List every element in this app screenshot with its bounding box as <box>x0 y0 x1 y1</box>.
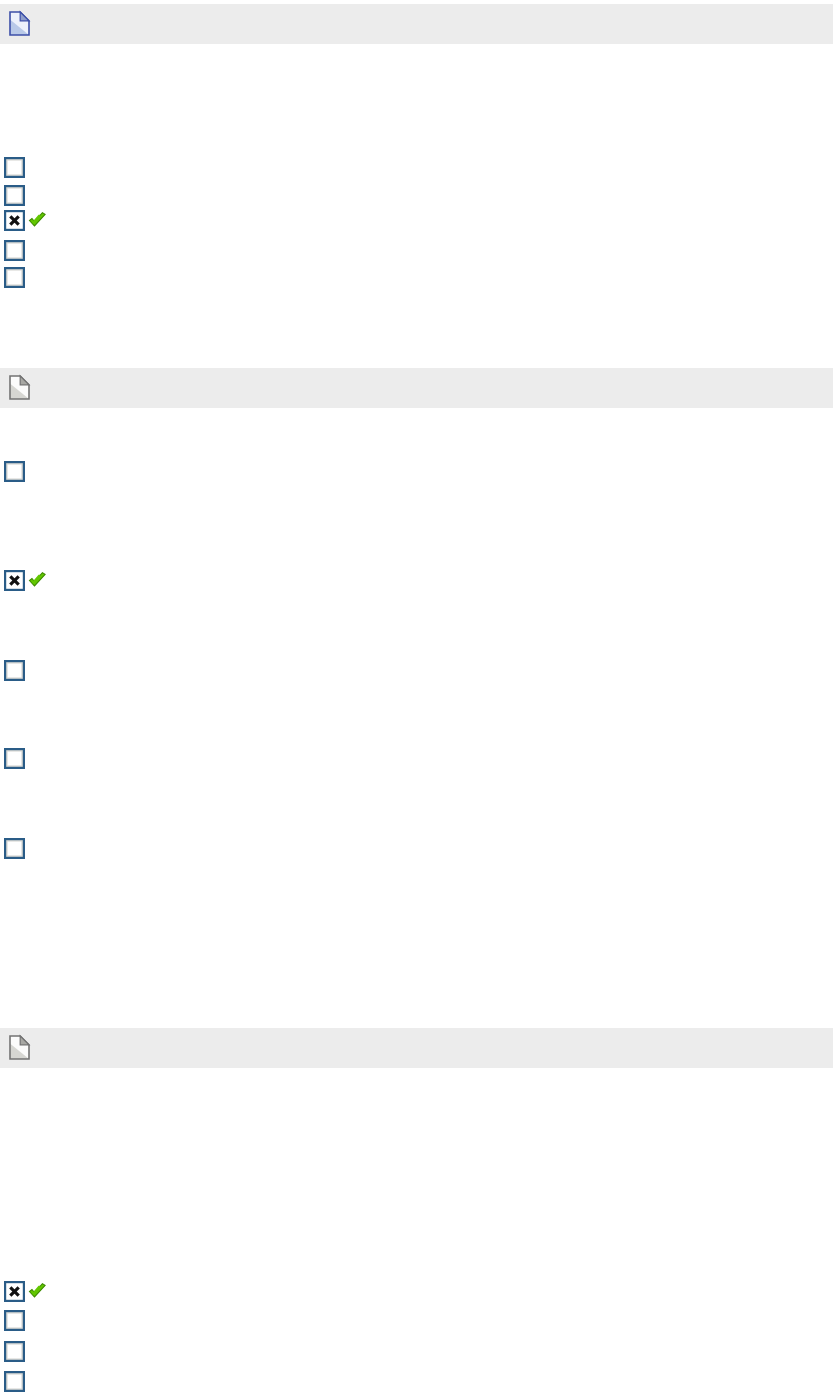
button[interactable]: Unchecked checkbox <box>4 461 25 482</box>
other: Approved <box>28 212 46 229</box>
button[interactable]: Unchecked checkbox <box>4 1310 25 1331</box>
other: Approved <box>28 572 46 589</box>
other: Approved <box>28 1283 46 1300</box>
button[interactable]: Unchecked checkbox <box>4 748 25 769</box>
button[interactable]: Unchecked checkbox <box>4 1341 25 1362</box>
button[interactable]: Unchecked checkbox <box>4 185 25 206</box>
button[interactable]: Unchecked checkbox <box>4 267 25 288</box>
button[interactable]: Unchecked checkbox <box>4 1371 25 1392</box>
button[interactable] <box>0 4 833 44</box>
button[interactable]: Checked checkbox <box>4 1281 25 1302</box>
button[interactable]: Unchecked checkbox <box>4 660 25 681</box>
button[interactable]: Checked checkbox <box>4 210 25 231</box>
button[interactable] <box>0 1028 833 1068</box>
button[interactable]: Unchecked checkbox <box>4 157 25 178</box>
button[interactable] <box>0 368 833 408</box>
button[interactable]: Unchecked checkbox <box>4 838 25 859</box>
button[interactable]: Checked checkbox <box>4 570 25 591</box>
button[interactable]: Unchecked checkbox <box>4 240 25 261</box>
